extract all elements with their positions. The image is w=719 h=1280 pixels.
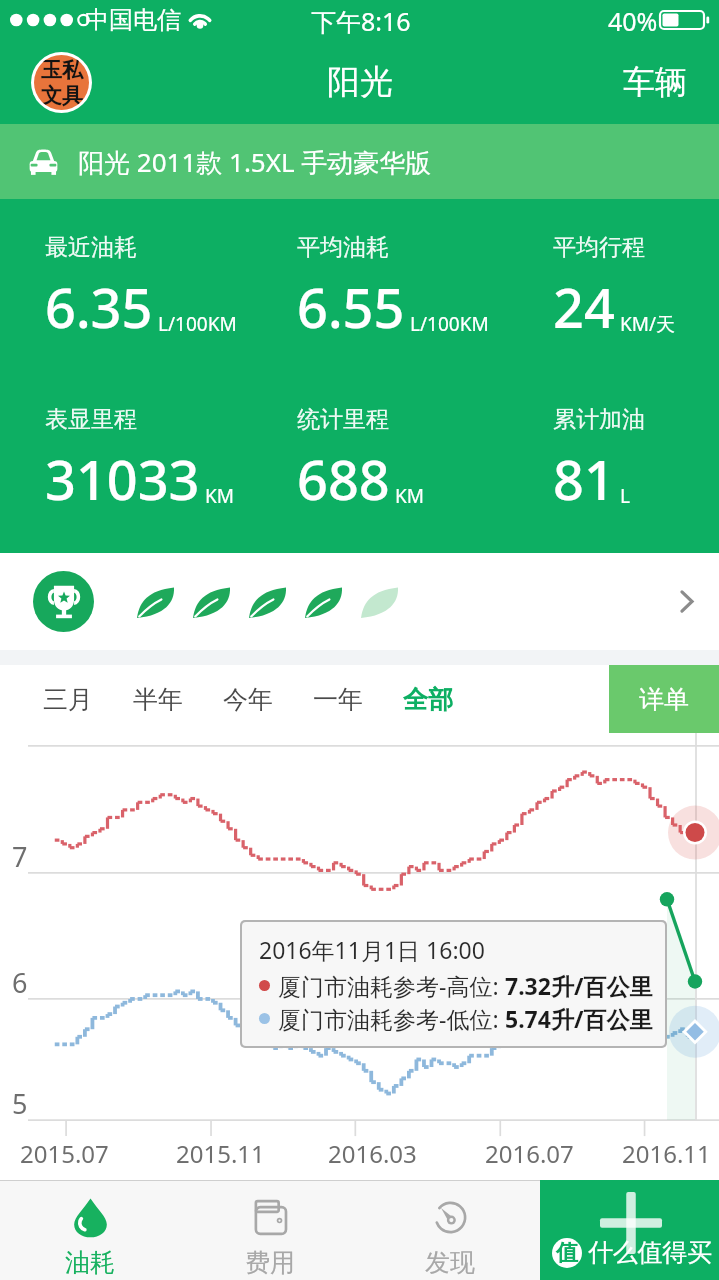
staticText: 费用 [245, 1247, 295, 1278]
button[interactable]: 油耗 [0, 1180, 180, 1280]
button[interactable]: Add record [540, 1180, 719, 1280]
staticText: KM [205, 483, 234, 509]
staticText: 厦门市油耗参考-高位: [278, 970, 505, 1001]
staticText: 下午8:16 [311, 4, 411, 38]
staticText: KM/天 [620, 311, 676, 337]
staticText: 半年 [133, 684, 183, 715]
staticText: 2015.07 [20, 1137, 109, 1170]
button[interactable]: Profile [31, 52, 92, 113]
staticText: L [620, 483, 630, 509]
button[interactable]: 今年 [203, 665, 293, 733]
staticText: 2016.11 [622, 1137, 711, 1170]
staticText: 一年 [313, 684, 363, 715]
staticText: 40% [608, 4, 658, 38]
button[interactable]: 详单 [609, 665, 719, 733]
staticText: L/100KM [410, 311, 489, 337]
staticText: 24 [553, 270, 615, 344]
staticText: 6.35 [45, 270, 153, 344]
staticText: 统计里程 [297, 405, 389, 434]
staticText: 平均行程 [553, 233, 645, 262]
button[interactable]: 半年 [113, 665, 203, 733]
staticText: 累计加油 [553, 405, 645, 434]
staticText: 文具 [41, 83, 83, 109]
staticText: 厦门市油耗参考-低位: [278, 1003, 505, 1034]
button[interactable]: Eco driving achievements [0, 553, 719, 650]
staticText: 7 [12, 838, 28, 875]
staticText: 今年 [223, 684, 273, 715]
staticText: L/100KM [158, 311, 237, 337]
staticText: 31033 [45, 442, 200, 516]
staticText: 全部 [403, 684, 453, 715]
staticText: 5.74升/百公里 [505, 1003, 653, 1034]
staticText: 中国电信 [85, 5, 181, 35]
staticText: 阳光 [327, 61, 393, 103]
staticText: 表显里程 [45, 405, 137, 434]
staticText: 车辆 [623, 62, 687, 102]
button[interactable]: 阳光 2011款 1.5XL 手动豪华版 [0, 124, 719, 199]
staticText: 三月 [43, 684, 93, 715]
staticText: 2016年11月1日 16:00 [259, 934, 485, 965]
staticText: 7.32升/百公里 [505, 970, 653, 1001]
staticText: 阳光 2011款 1.5XL 手动豪华版 [78, 144, 432, 180]
button[interactable]: 发现 [360, 1180, 540, 1280]
staticText: 值 [556, 1239, 578, 1267]
staticText: 688 [297, 442, 390, 516]
staticText: 6.55 [297, 270, 405, 344]
staticText: 6 [12, 964, 28, 1001]
staticText: 平均油耗 [297, 233, 389, 262]
button[interactable]: 车辆 [597, 40, 719, 124]
staticText: 2016.07 [485, 1137, 574, 1170]
staticText: 玉私 [41, 57, 83, 83]
staticText: 2015.11 [176, 1137, 265, 1170]
staticText: 5 [12, 1085, 28, 1122]
button[interactable]: 费用 [180, 1180, 360, 1280]
staticText: 什么值得买 [588, 1237, 712, 1268]
staticText: 81 [553, 442, 615, 516]
staticText: KM [395, 483, 424, 509]
button[interactable]: 一年 [293, 665, 383, 733]
button[interactable]: 全部 [383, 665, 473, 733]
staticText: 发现 [425, 1247, 475, 1278]
button[interactable]: 三月 [23, 665, 113, 733]
staticText: 油耗 [65, 1247, 115, 1278]
staticText: 详单 [639, 684, 689, 715]
staticText: 2016.03 [328, 1137, 417, 1170]
staticText: 最近油耗 [45, 233, 137, 262]
